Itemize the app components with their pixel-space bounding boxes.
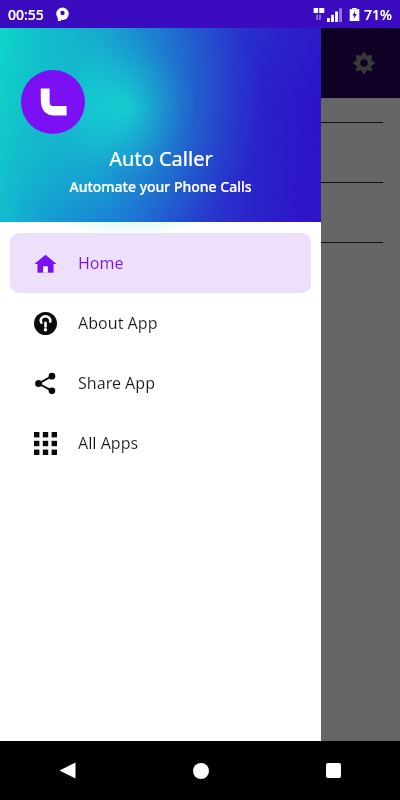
staticText: 00:55 xyxy=(8,5,44,24)
staticText: All Apps xyxy=(78,432,139,454)
button[interactable]: Home xyxy=(134,741,267,800)
staticText: About App xyxy=(78,312,158,334)
button[interactable]: Settings xyxy=(342,41,386,85)
staticText: Make automated phone calls, schedule the… xyxy=(24,390,288,509)
button[interactable]: All Apps xyxy=(10,413,311,473)
button[interactable]: Home xyxy=(10,233,311,293)
staticText: 71% xyxy=(364,5,392,24)
button[interactable]: About App xyxy=(10,293,311,353)
staticText: Share App xyxy=(78,372,156,394)
staticText: Home xyxy=(78,252,124,274)
button[interactable]: Share App xyxy=(10,353,311,413)
button[interactable]: Recent apps xyxy=(267,741,400,800)
staticText: Automate your Phone Calls xyxy=(69,177,252,196)
staticText: Auto Caller xyxy=(109,145,213,172)
button[interactable]: Back xyxy=(0,741,134,800)
